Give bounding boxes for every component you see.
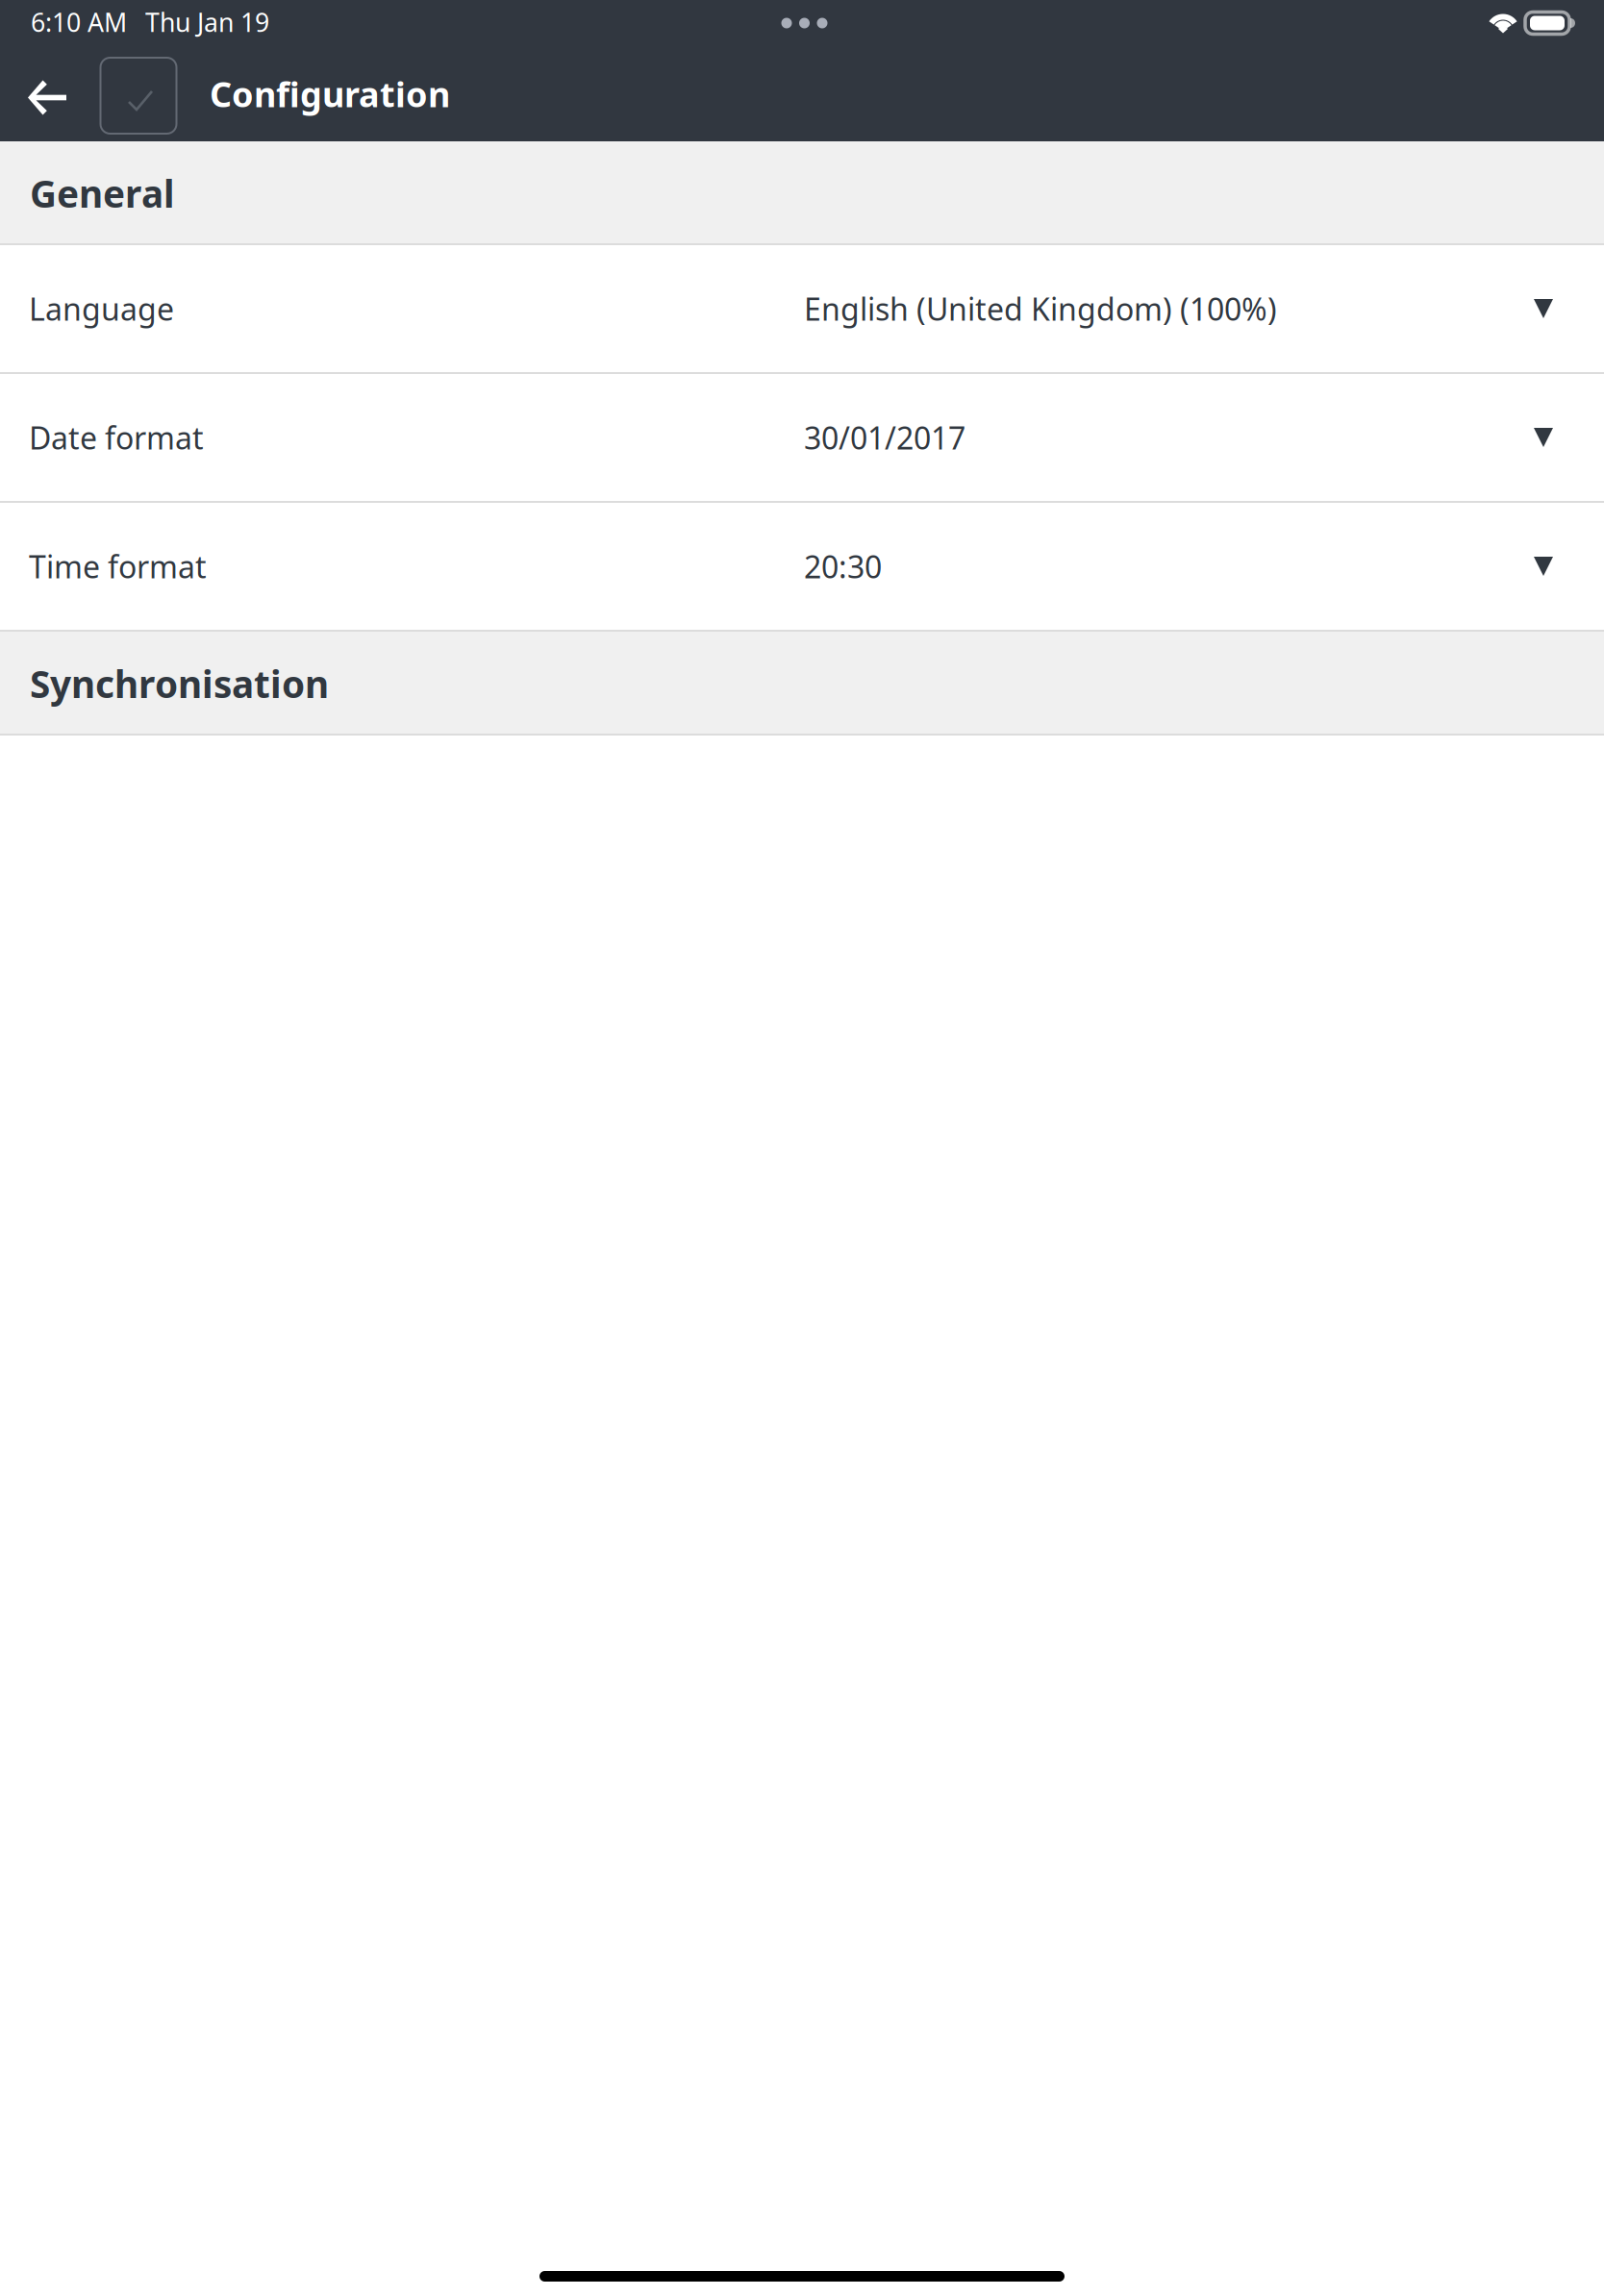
staticText: 20:30 (804, 546, 882, 587)
button[interactable]: Select all (84, 56, 193, 141)
staticText: 6:10 AM (31, 5, 127, 39)
staticText: English (United Kingdom) (100%) (804, 288, 1277, 329)
staticText: Time format (29, 546, 207, 587)
staticText: Configuration (210, 71, 450, 117)
staticText: Date format (29, 417, 204, 458)
staticText: Language (29, 288, 174, 329)
staticText: Synchronisation (30, 659, 329, 708)
staticText: 30/01/2017 (804, 417, 965, 458)
staticText: General (30, 169, 175, 218)
button[interactable]: Back (11, 56, 84, 141)
button[interactable]: Language (0, 245, 1604, 372)
staticText: Thu Jan 19 (145, 5, 269, 39)
button[interactable]: Date format (0, 374, 1604, 501)
button[interactable]: Time format (0, 503, 1604, 630)
